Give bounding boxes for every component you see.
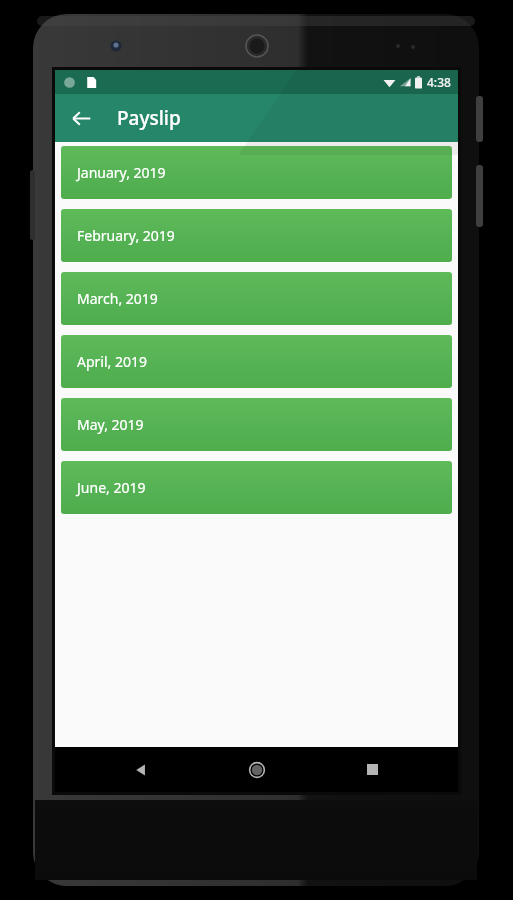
button[interactable]: March, 2019 (61, 272, 452, 325)
staticText: 4:38 (427, 74, 451, 90)
button[interactable]: Back (61, 98, 101, 138)
button[interactable]: Back (111, 747, 171, 792)
button[interactable]: Recent apps (342, 747, 402, 792)
button[interactable]: June, 2019 (61, 461, 452, 514)
staticText: May, 2019 (77, 415, 144, 434)
button[interactable]: February, 2019 (61, 209, 452, 262)
button[interactable]: April, 2019 (61, 335, 452, 388)
button[interactable]: January, 2019 (61, 146, 452, 199)
staticText: February, 2019 (77, 226, 175, 245)
staticText: March, 2019 (77, 289, 158, 308)
staticText: June, 2019 (77, 478, 146, 497)
staticText: January, 2019 (77, 163, 166, 182)
staticText: April, 2019 (77, 352, 147, 371)
button[interactable]: Home (227, 747, 287, 792)
button[interactable]: May, 2019 (61, 398, 452, 451)
staticText: Payslip (117, 105, 181, 131)
